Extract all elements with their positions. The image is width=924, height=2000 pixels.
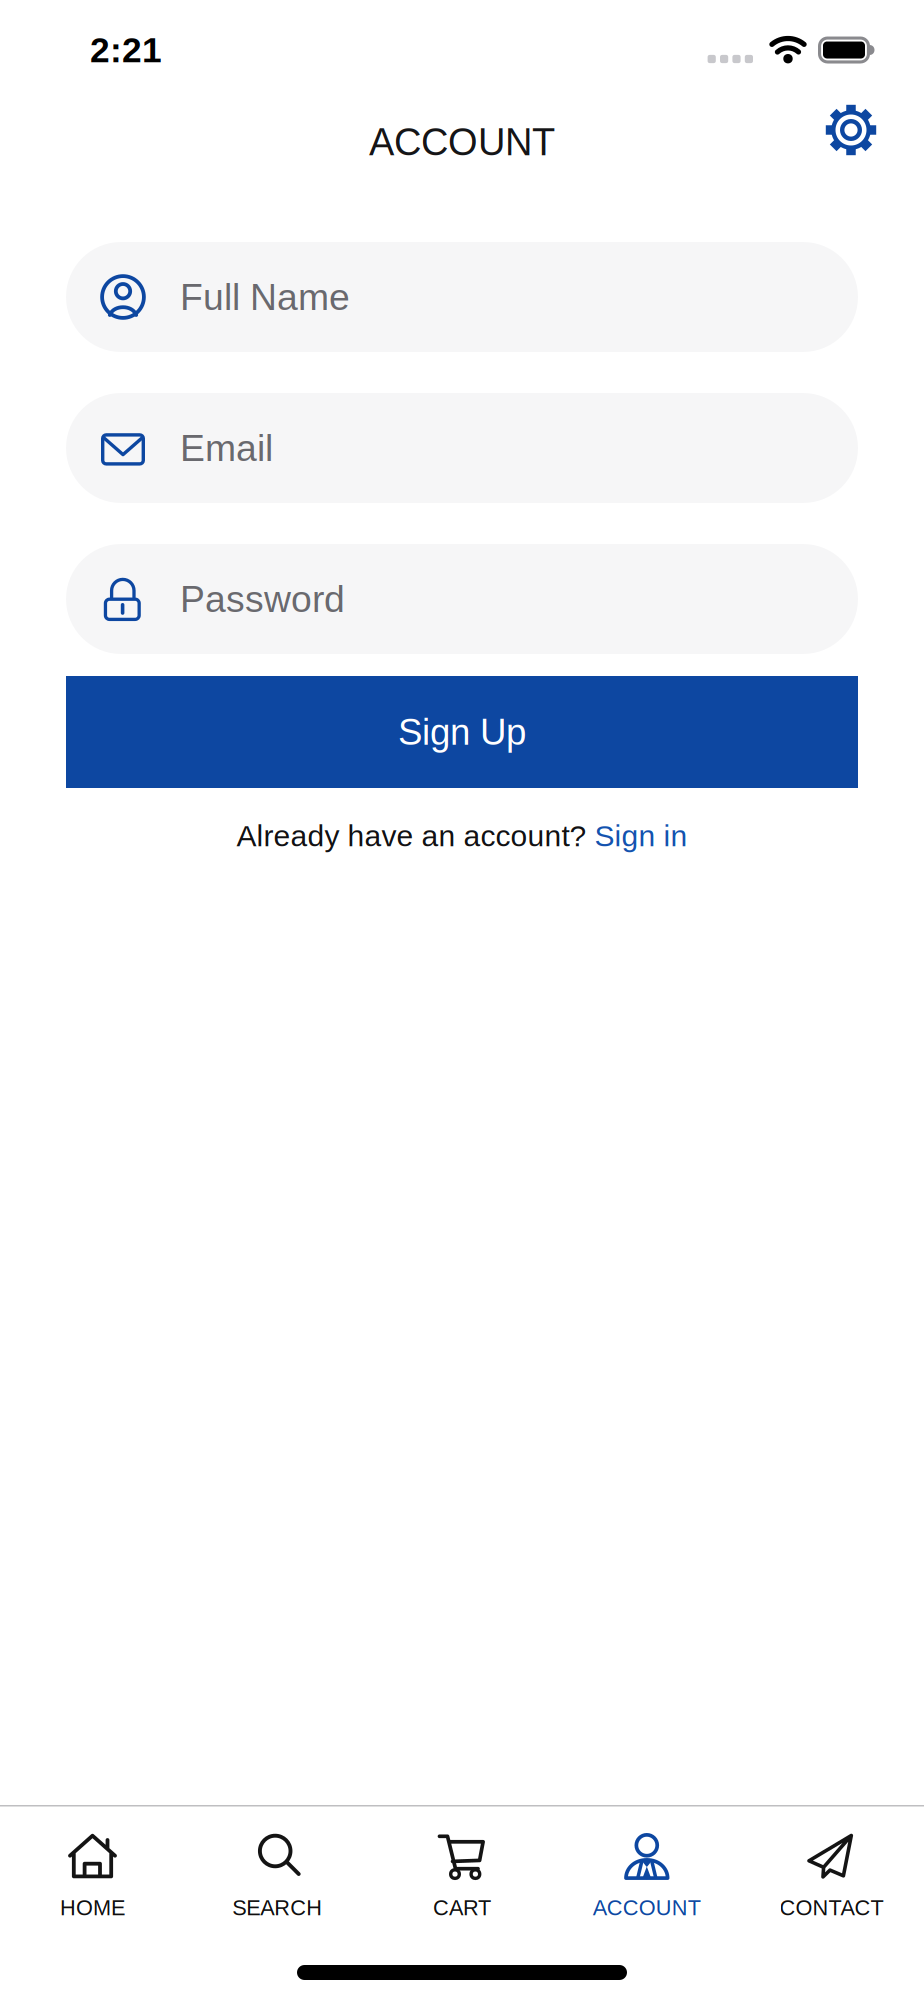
button[interactable]: CONTACT xyxy=(739,1833,924,1920)
staticText: CONTACT xyxy=(780,1895,884,1920)
staticText: Sign in xyxy=(594,819,687,852)
staticText: ACCOUNT xyxy=(369,121,555,163)
button[interactable]: SEARCH xyxy=(185,1833,370,1920)
staticText: Already have an account? xyxy=(236,819,594,852)
button[interactable]: Password xyxy=(66,544,858,654)
button[interactable]: Settings xyxy=(825,104,877,156)
staticText: Email xyxy=(180,427,273,469)
staticText: 2:21 xyxy=(90,30,162,70)
staticText: Full Name xyxy=(180,276,350,318)
button[interactable]: HOME xyxy=(0,1833,185,1920)
staticText: CART xyxy=(433,1895,491,1920)
staticText: Sign Up xyxy=(398,711,526,752)
button[interactable]: Full Name xyxy=(66,242,858,352)
staticText: HOME xyxy=(60,1895,125,1920)
staticText: SEARCH xyxy=(232,1895,322,1920)
button[interactable]: ACCOUNT xyxy=(554,1833,739,1920)
button[interactable]: Sign Up xyxy=(66,676,858,788)
staticText: Password xyxy=(180,578,345,620)
button[interactable]: Sign in xyxy=(594,819,687,852)
button[interactable]: Email xyxy=(66,393,858,503)
staticText: ACCOUNT xyxy=(593,1895,701,1920)
button[interactable]: CART xyxy=(370,1833,554,1920)
